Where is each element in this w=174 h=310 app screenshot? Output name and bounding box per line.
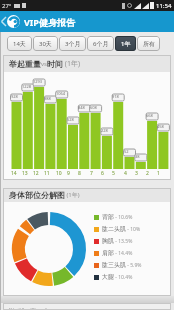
staticText: 举重强度 (1年) [8,307,54,310]
staticText: 肱三头肌 [102,261,126,269]
staticText: 52 [124,149,136,156]
staticText: 肩部 [102,249,114,257]
staticText: 848 [78,105,90,112]
staticText: 458 [157,124,169,131]
staticText: 668 [146,113,158,120]
staticText: 3 [135,170,147,177]
button[interactable]: 背部 [94,211,133,223]
staticText: 1228 [22,84,34,91]
staticText: 14天 [13,40,26,48]
staticText: 大腿 [102,273,114,281]
staticText: 988 [44,96,56,103]
staticText: 13 [22,170,34,177]
button[interactable]: 肱二头肌 [94,223,141,235]
staticText: 14 [11,170,23,177]
staticText: - 10% [126,226,141,233]
button[interactable]: 所有 [137,36,160,51]
staticText: - 5.9% [126,262,142,269]
button[interactable]: 大腿 [94,271,133,283]
button[interactable]: 1年 [115,36,136,51]
staticText: - 10.6% [114,214,133,221]
button[interactable]: 6个月 [87,36,114,51]
staticText: 2 [146,170,158,177]
staticText: 1064 [56,91,68,98]
staticText: vs [41,60,47,68]
staticText: 6个月 [93,40,109,48]
staticText: 1293 [33,79,45,86]
staticText: 27° [2,2,12,10]
staticText: 528 [67,117,79,124]
staticText: 11 [44,170,56,177]
staticText: 11:54 [156,2,172,10]
button[interactable]: 肩部 [94,247,133,259]
button[interactable]: 30天 [33,36,58,51]
staticText: 4 [124,170,136,177]
staticText: 12 [33,170,45,177]
staticText: 7 [90,170,102,177]
staticText: 8 [78,170,90,177]
staticText: 时间 [47,59,63,69]
staticText: - 13.5% [114,238,133,245]
button[interactable]: 胸肌 [94,235,133,247]
staticText: VIP健身报告 [24,16,75,28]
staticText: 身体部位分解图 [9,190,65,200]
staticText: 228 [101,128,113,135]
staticText: 5 [112,170,124,177]
staticText: 肱二头肌 [102,225,126,233]
staticText: 所有 [143,40,155,48]
staticText: 胸肌 [102,237,114,245]
staticText: 38 [135,154,147,161]
staticText: 背部 [102,213,114,221]
button[interactable]: 3个月 [59,36,86,51]
staticText: 举起重量 [9,59,41,69]
staticText: 918 [112,94,124,101]
staticText: 1 [157,170,169,177]
staticText: - 14.4% [114,250,133,257]
button[interactable] [7,15,20,28]
staticText: - 10.4% [114,274,133,281]
staticText: 1年 [121,40,131,48]
staticText: 30天 [39,40,52,48]
staticText: 928 [11,94,23,101]
staticText: 10 [56,170,68,177]
staticText: 9 [67,170,79,177]
button[interactable]: 14天 [7,36,32,51]
staticText: (1年) [63,59,81,69]
staticText: 3个月 [65,40,81,48]
button[interactable]: 肱三头肌 [94,259,142,271]
staticText: (1年) [65,191,80,199]
staticText: 6 [101,170,113,177]
staticText: 608 [90,105,102,112]
